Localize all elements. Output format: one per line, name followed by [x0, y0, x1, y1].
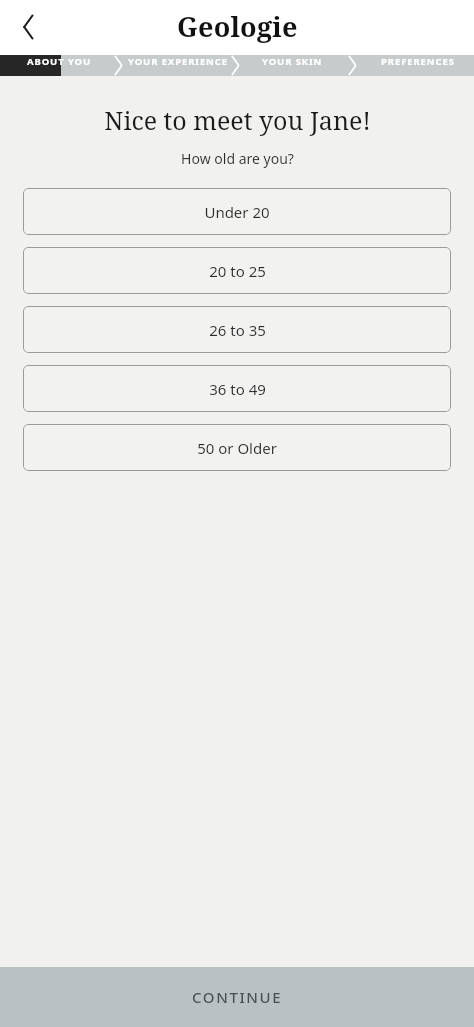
staticText: Geologie — [177, 8, 298, 45]
button[interactable]: 20 to 25 — [23, 247, 451, 294]
staticText: 50 or Older — [197, 438, 277, 458]
staticText: 26 to 35 — [209, 320, 266, 340]
button[interactable] — [0, 55, 61, 76]
button[interactable]: Under 20 — [23, 188, 451, 235]
button[interactable]: 36 to 49 — [23, 365, 451, 412]
staticText: Under 20 — [204, 202, 270, 222]
staticText: PREFERENCES — [381, 55, 455, 68]
staticText: ABOUT YOU — [27, 55, 92, 68]
staticText: 20 to 25 — [209, 261, 266, 281]
staticText: How old are you? — [181, 149, 294, 168]
button[interactable]: 26 to 35 — [23, 306, 451, 353]
button[interactable]: Back — [10, 9, 46, 45]
staticText: YOUR EXPERIENCE — [128, 55, 228, 68]
staticText: YOUR SKIN — [262, 55, 323, 68]
button[interactable]: 50 or Older — [23, 424, 451, 471]
staticText: 36 to 49 — [209, 379, 266, 399]
staticText: Nice to meet you Jane! — [104, 103, 371, 137]
staticText: CONTINUE — [192, 987, 283, 1007]
button[interactable]: CONTINUE — [0, 967, 474, 1027]
